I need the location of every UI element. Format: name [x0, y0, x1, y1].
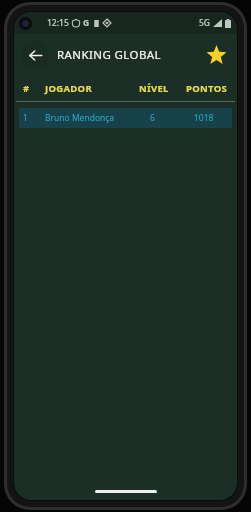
staticText: 5G — [199, 17, 211, 29]
staticText: 6 — [150, 112, 155, 124]
staticText: 1 — [23, 112, 28, 124]
staticText: 12:15 — [47, 17, 69, 29]
staticText: NÍVEL — [139, 82, 169, 95]
staticText: RANKING GLOBAL — [57, 47, 161, 63]
button[interactable]: 1 — [19, 108, 232, 128]
staticText: Bruno Mendonça — [45, 112, 115, 124]
staticText: # — [23, 82, 30, 95]
button[interactable]: Back — [21, 41, 49, 69]
staticText: G — [83, 17, 90, 29]
button[interactable]: Favorite — [201, 40, 231, 70]
staticText: JOGADOR — [45, 82, 92, 95]
staticText: PONTOS — [186, 82, 227, 95]
staticText: 1018 — [194, 112, 214, 124]
